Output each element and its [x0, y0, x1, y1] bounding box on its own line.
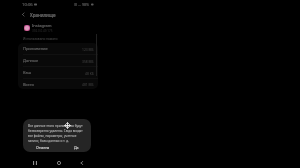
button[interactable]: Данные [18, 55, 98, 66]
button[interactable]: Recents [29, 157, 40, 168]
staticText: Данные [23, 58, 39, 63]
button[interactable]: Home [53, 157, 64, 168]
staticText: 10:06 [22, 2, 33, 8]
staticText: Использовано памяти [23, 37, 58, 41]
staticText: Да [74, 145, 79, 150]
button[interactable]: Кэш [18, 67, 98, 78]
staticText: 481 МБ [82, 82, 94, 86]
staticText: Отмена [36, 145, 50, 150]
button[interactable]: Да [72, 143, 81, 152]
button[interactable]: Всего [18, 79, 98, 89]
staticText: 358 МБ [82, 59, 94, 63]
staticText: Кэш [23, 70, 32, 75]
staticText: ☰ … [74, 2, 81, 7]
button[interactable]: Приложение [18, 43, 98, 54]
button[interactable]: Back [17, 9, 30, 20]
staticText: 48 КБ [85, 71, 94, 75]
staticText: 123 МБ [82, 47, 94, 51]
staticText: Всего [23, 82, 34, 87]
staticText: Хранилище [30, 12, 56, 18]
button[interactable]: Back [76, 157, 87, 168]
staticText: 392.0.0.49.175 [32, 29, 53, 33]
staticText: Приложение [23, 46, 48, 51]
staticText: Все данные этого приложения будут безвоз… [28, 124, 86, 143]
staticText: Instagram [32, 23, 52, 28]
button[interactable]: Отмена [34, 143, 52, 152]
staticText: 98% [82, 2, 90, 7]
